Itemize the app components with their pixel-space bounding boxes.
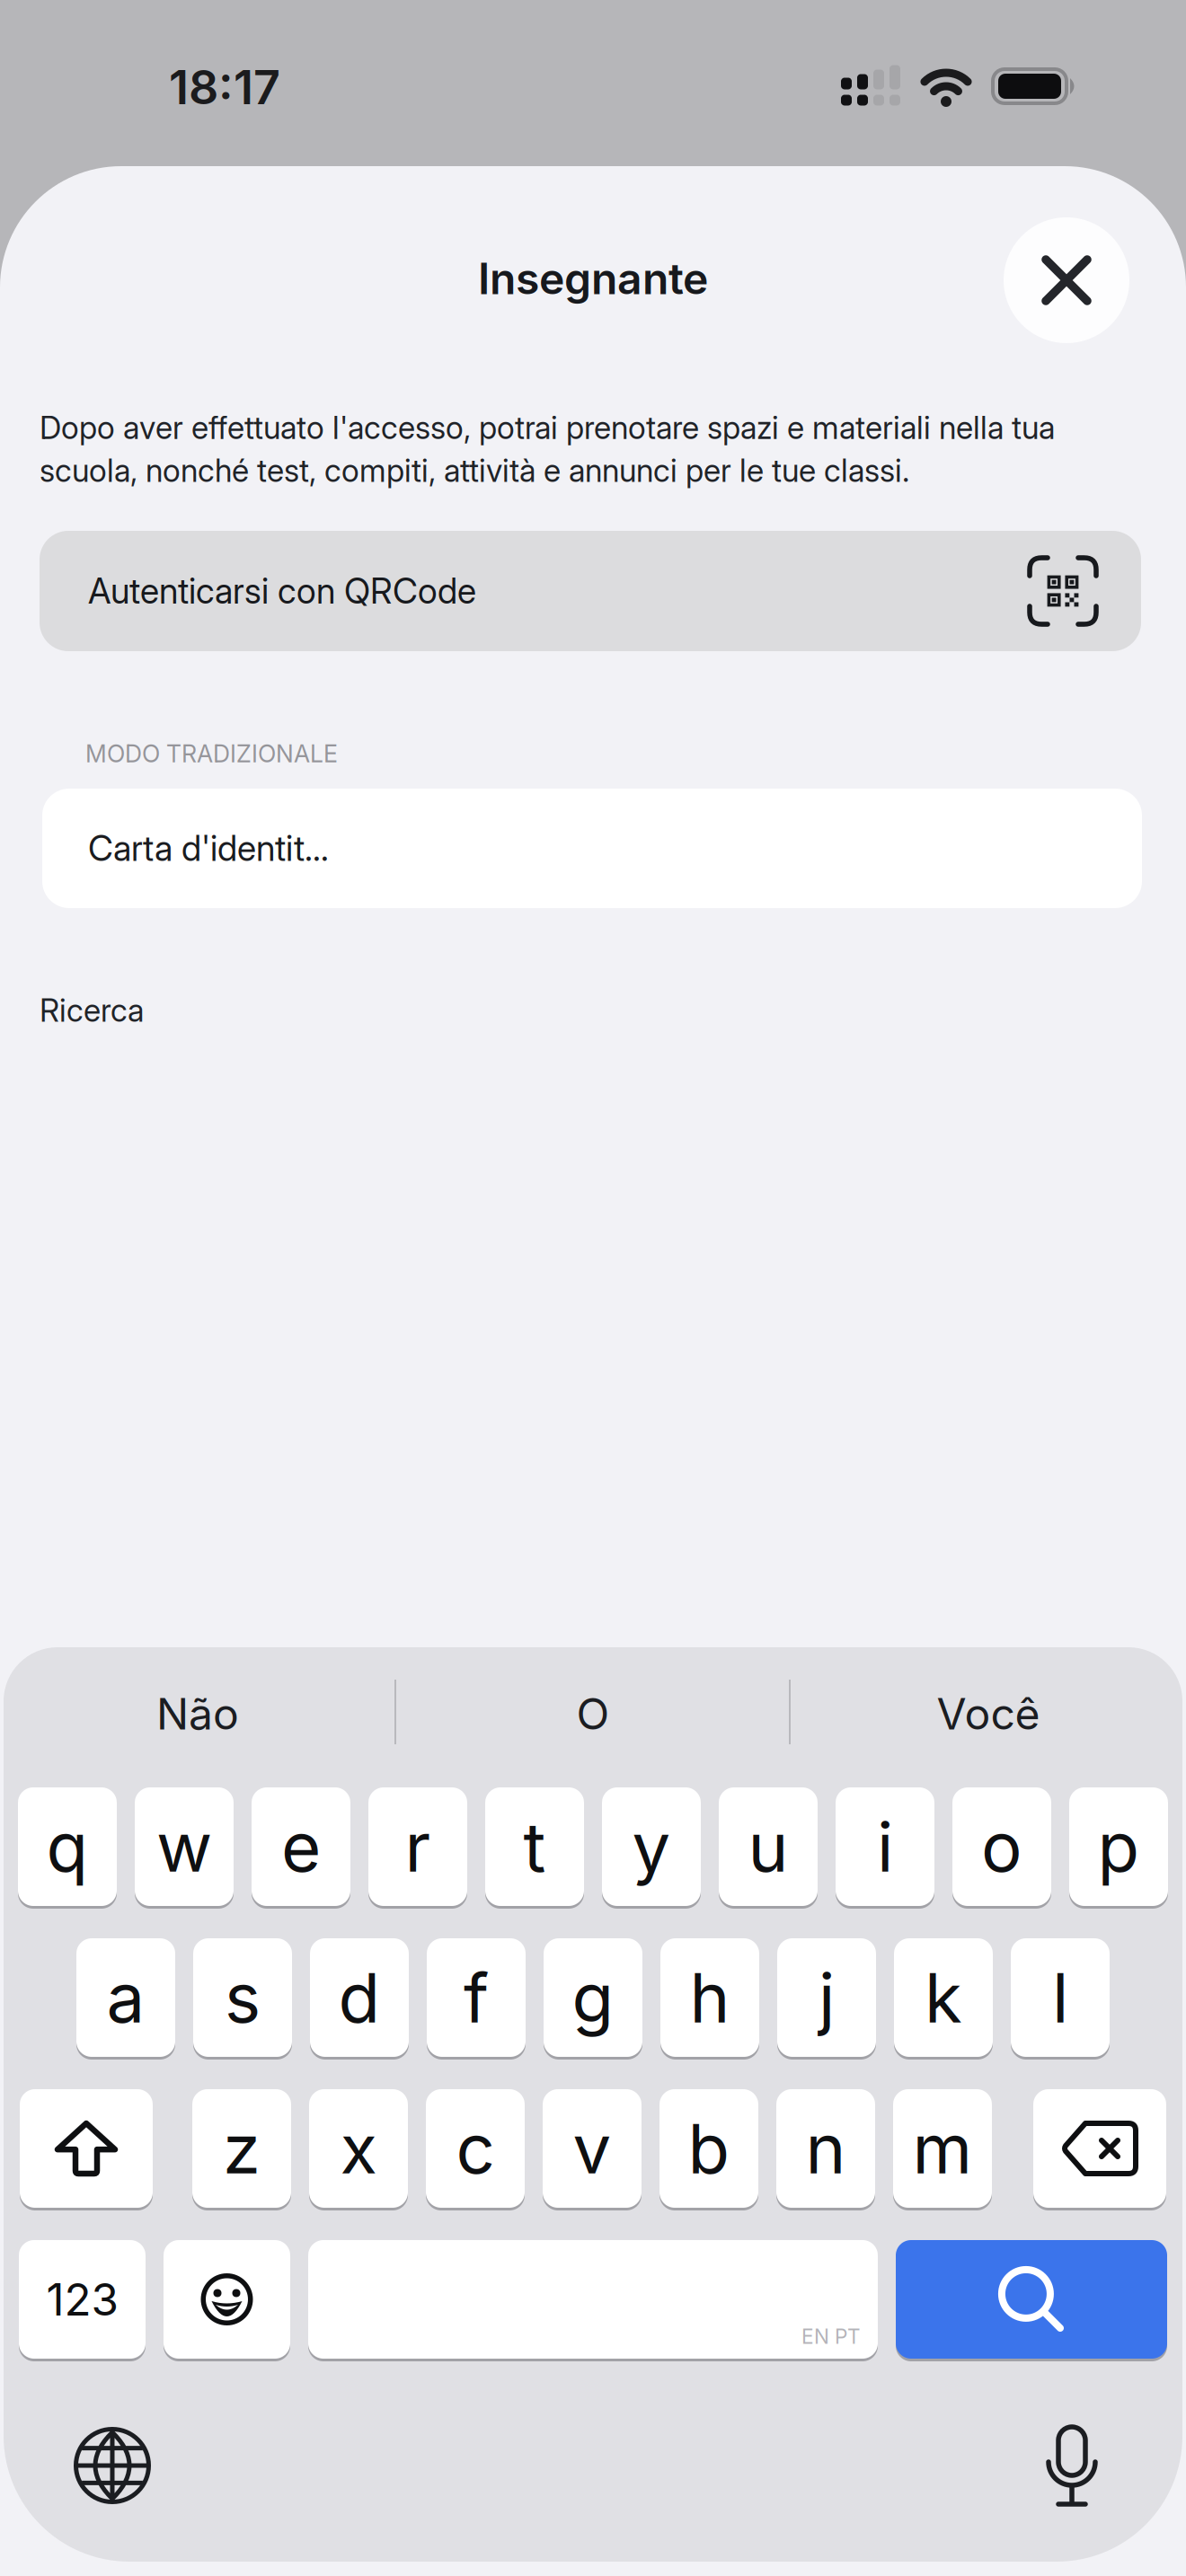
button[interactable]: u [719,1786,818,1907]
staticText: n [805,2108,846,2189]
staticText: d [338,1957,381,2038]
staticText: f [464,1957,489,2038]
staticText: v [573,2108,611,2189]
button[interactable]: Delete [1033,2088,1166,2209]
staticText: EN PT [801,2324,860,2348]
button[interactable]: Carta d'identit… [42,789,1142,908]
button[interactable]: x [309,2088,408,2209]
staticText: u [748,1806,788,1887]
button[interactable]: b [659,2088,758,2209]
staticText: Não [156,1688,239,1739]
staticText: O [576,1688,610,1739]
button[interactable]: e [252,1786,350,1907]
button[interactable]: q [18,1786,117,1907]
staticText: 123 [46,2273,118,2325]
staticText: s [225,1957,261,2038]
staticText: MODO TRADIZIONALE [85,739,338,768]
button[interactable]: l [1011,1937,1110,2058]
staticText: Dopo aver effettuato l'accesso, potrai p… [40,409,1055,489]
button[interactable]: h [660,1937,759,2058]
button[interactable]: d [310,1937,409,2058]
staticText: y [632,1806,671,1887]
button[interactable]: a [76,1937,175,2058]
staticText: x [340,2108,377,2189]
button[interactable]: c [426,2088,525,2209]
staticText: e [281,1806,321,1887]
staticText: z [223,2108,261,2189]
staticText: Insegnante [478,253,708,304]
staticText: m [912,2108,973,2189]
staticText: j [819,1957,835,2038]
staticText: k [925,1957,962,2038]
button[interactable]: g [544,1937,642,2058]
staticText: Autenticarsi con QRCode [88,571,476,611]
button[interactable]: j [777,1937,876,2058]
button[interactable]: Dictation [1018,2412,1126,2519]
staticText: a [106,1957,145,2038]
button[interactable]: Close [1004,217,1129,343]
button[interactable]: O [413,1655,773,1772]
button[interactable]: Space [308,2239,878,2360]
staticText: i [877,1806,893,1887]
button[interactable]: y [602,1786,701,1907]
button[interactable]: Next keyboard [58,2412,166,2519]
staticText: w [156,1806,212,1887]
button[interactable]: n [776,2088,875,2209]
button[interactable]: o [952,1786,1051,1907]
staticText: l [1052,1957,1068,2038]
staticText: o [981,1806,1022,1887]
button[interactable]: f [427,1937,526,2058]
button[interactable]: Não [18,1655,377,1772]
staticText: h [690,1957,730,2038]
staticText: Você [937,1688,1040,1739]
button[interactable]: Shift [20,2088,153,2209]
button[interactable]: p [1069,1786,1168,1907]
button[interactable]: s [193,1937,292,2058]
button[interactable]: i [836,1786,934,1907]
staticText: p [1097,1806,1140,1887]
staticText: b [688,2108,730,2189]
staticText: Carta d'identit… [88,828,329,869]
button[interactable]: 123 [19,2239,146,2360]
button[interactable]: Você [809,1655,1168,1772]
button[interactable]: Emoji [164,2239,290,2360]
button[interactable]: r [368,1786,467,1907]
button[interactable]: k [894,1937,993,2058]
staticText: q [46,1806,89,1887]
staticText: Ricerca [40,992,144,1029]
button[interactable]: z [192,2088,291,2209]
button[interactable]: w [135,1786,234,1907]
staticText: 18:17 [169,60,280,115]
staticText: t [523,1806,546,1887]
button[interactable]: m [893,2088,992,2209]
staticText: r [405,1806,431,1887]
button[interactable]: v [543,2088,642,2209]
staticText: c [456,2108,495,2189]
button[interactable]: Autenticarsi con QRCode [40,531,1141,651]
button[interactable]: Search [896,2239,1167,2360]
staticText: g [572,1957,614,2038]
button[interactable]: t [485,1786,584,1907]
